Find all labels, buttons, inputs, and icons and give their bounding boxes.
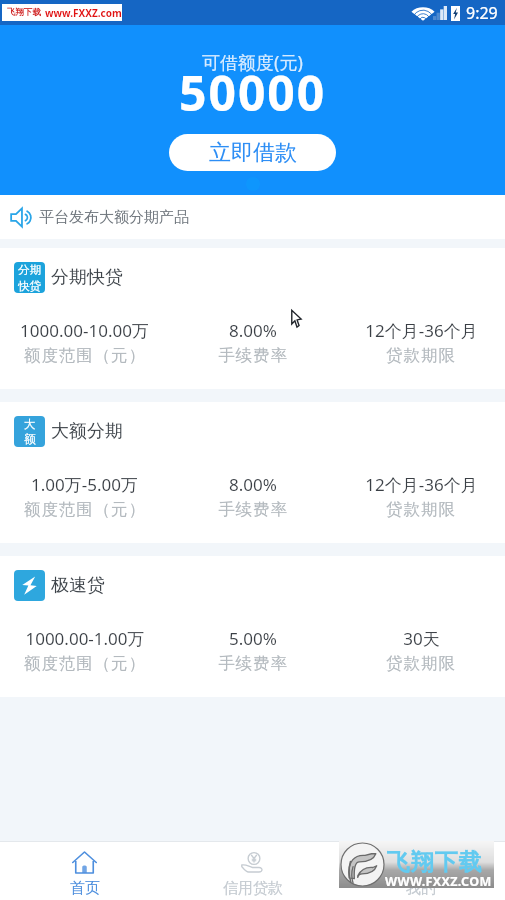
staticText: 手续费率 xyxy=(218,499,288,520)
button[interactable]: 分期 xyxy=(0,248,505,389)
staticText: 额 xyxy=(24,432,36,446)
staticText: 我的 xyxy=(406,879,436,898)
staticText: 贷款期限 xyxy=(386,499,456,520)
button[interactable]: 我的 xyxy=(337,842,505,900)
staticText: 手续费率 xyxy=(218,653,288,674)
staticText: 极速贷 xyxy=(51,574,105,597)
button[interactable]: 信用贷款 xyxy=(169,842,337,900)
staticText: WWW.FXXZ.COM xyxy=(385,873,492,890)
staticText: 飞翔下载 xyxy=(7,7,41,18)
staticText: 大额分期 xyxy=(51,420,123,443)
staticText: 飞翔下载 xyxy=(386,848,482,877)
button[interactable]: 首页 xyxy=(0,842,169,900)
staticText: 12个月-36个月 xyxy=(365,319,478,342)
button[interactable]: 平台发布大额分期产品 xyxy=(0,195,505,239)
staticText: 额度范围（元） xyxy=(24,345,146,366)
staticText: 可借额度(元) xyxy=(202,50,303,75)
staticText: 1000.00-1.00万 xyxy=(25,627,145,650)
staticText: 9:29 xyxy=(466,2,498,24)
staticText: 立即借款 xyxy=(209,139,297,167)
staticText: 30天 xyxy=(403,627,440,650)
staticText: 快贷 xyxy=(18,279,41,293)
staticText: 平台发布大额分期产品 xyxy=(39,208,189,227)
staticText: 额度范围（元） xyxy=(24,499,146,520)
staticText: 信用贷款 xyxy=(223,879,283,898)
staticText: 大 xyxy=(24,417,36,431)
staticText: 贷款期限 xyxy=(386,653,456,674)
staticText: 5.00% xyxy=(229,627,277,650)
staticText: 首页 xyxy=(70,879,100,898)
button[interactable]: 极速贷 xyxy=(0,556,505,697)
staticText: www.FXXZ.com xyxy=(45,6,122,20)
button[interactable]: 立即借款 xyxy=(169,134,336,171)
staticText: 50000 xyxy=(179,60,327,125)
staticText: 8.00% xyxy=(229,319,277,342)
staticText: 8.00% xyxy=(229,473,277,496)
staticText: 1.00万-5.00万 xyxy=(31,473,138,496)
staticText: 12个月-36个月 xyxy=(365,473,478,496)
staticText: 贷款期限 xyxy=(386,345,456,366)
button[interactable]: 大 xyxy=(0,402,505,543)
staticText: 1000.00-10.00万 xyxy=(20,319,149,342)
staticText: 额度范围（元） xyxy=(24,653,146,674)
staticText: 手续费率 xyxy=(218,345,288,366)
staticText: 分期快贷 xyxy=(51,266,123,289)
staticText: 分期 xyxy=(18,263,41,277)
